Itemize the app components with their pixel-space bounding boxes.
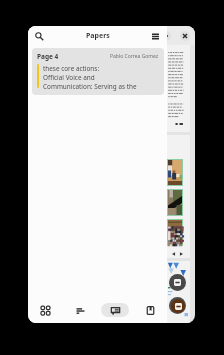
- button[interactable]: Bookmarks: [132, 297, 167, 323]
- button[interactable]: Annotation tool: [169, 274, 186, 291]
- staticText: Page 4: [37, 52, 59, 61]
- button[interactable]: Close: [180, 31, 190, 41]
- button[interactable]: Outline: [62, 297, 97, 323]
- staticText: these core actions: Official Voice and C…: [43, 64, 137, 91]
- staticText: Papers: [86, 31, 110, 41]
- button[interactable]: Annotations: [97, 297, 132, 323]
- button[interactable]: Thumbnails: [28, 297, 62, 323]
- button[interactable]: Search: [31, 28, 47, 44]
- button[interactable]: Menu: [147, 28, 163, 44]
- button[interactable]: Back: [161, 31, 171, 41]
- button[interactable]: Highlight tool: [169, 297, 186, 314]
- staticText: Pablo Correa Gomez: [110, 53, 159, 60]
- button[interactable]: Page 4: [32, 48, 164, 95]
